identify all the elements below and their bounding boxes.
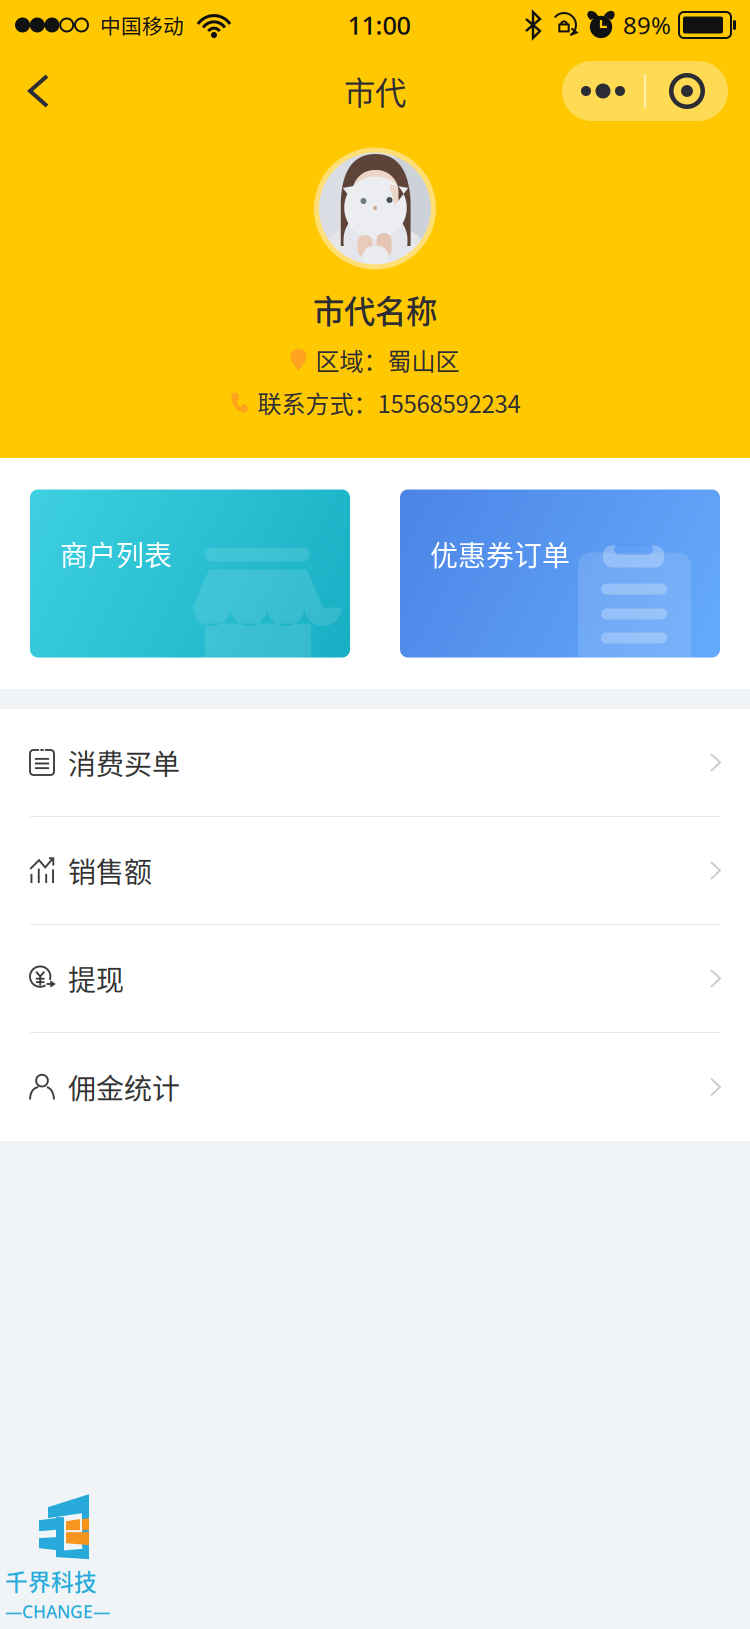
button[interactable]: 销售额 [0, 817, 750, 924]
staticText: 中国移动 [100, 10, 184, 40]
staticText: 提现 [68, 958, 124, 999]
button[interactable]: 优惠券订单 [400, 489, 720, 657]
staticText: 千界科技 [5, 1564, 97, 1597]
button[interactable]: 商户列表 [30, 489, 350, 657]
staticText: 佣金统计 [68, 1067, 180, 1107]
staticText: 商户列表 [60, 533, 172, 574]
staticText: 市代名称 [313, 287, 437, 332]
button[interactable]: 佣金统计 [0, 1033, 750, 1141]
button[interactable]: Close mini program [646, 61, 728, 121]
staticText: —CHANGE— [5, 1600, 110, 1623]
button[interactable]: 消费买单 [0, 709, 750, 816]
staticText: 89% [623, 9, 671, 41]
staticText: 优惠券订单 [430, 533, 570, 574]
button[interactable]: More options [562, 61, 644, 121]
staticText: 11:00 [347, 8, 410, 42]
button[interactable]: 提现 [0, 925, 750, 1032]
staticText: 市代 [344, 68, 406, 114]
button[interactable]: Back [0, 60, 72, 122]
staticText: 联系方式：15568592234 [257, 385, 520, 420]
staticText: 销售额 [68, 850, 152, 891]
staticText: 消费买单 [68, 742, 180, 783]
staticText: 区域：蜀山区 [315, 342, 459, 377]
